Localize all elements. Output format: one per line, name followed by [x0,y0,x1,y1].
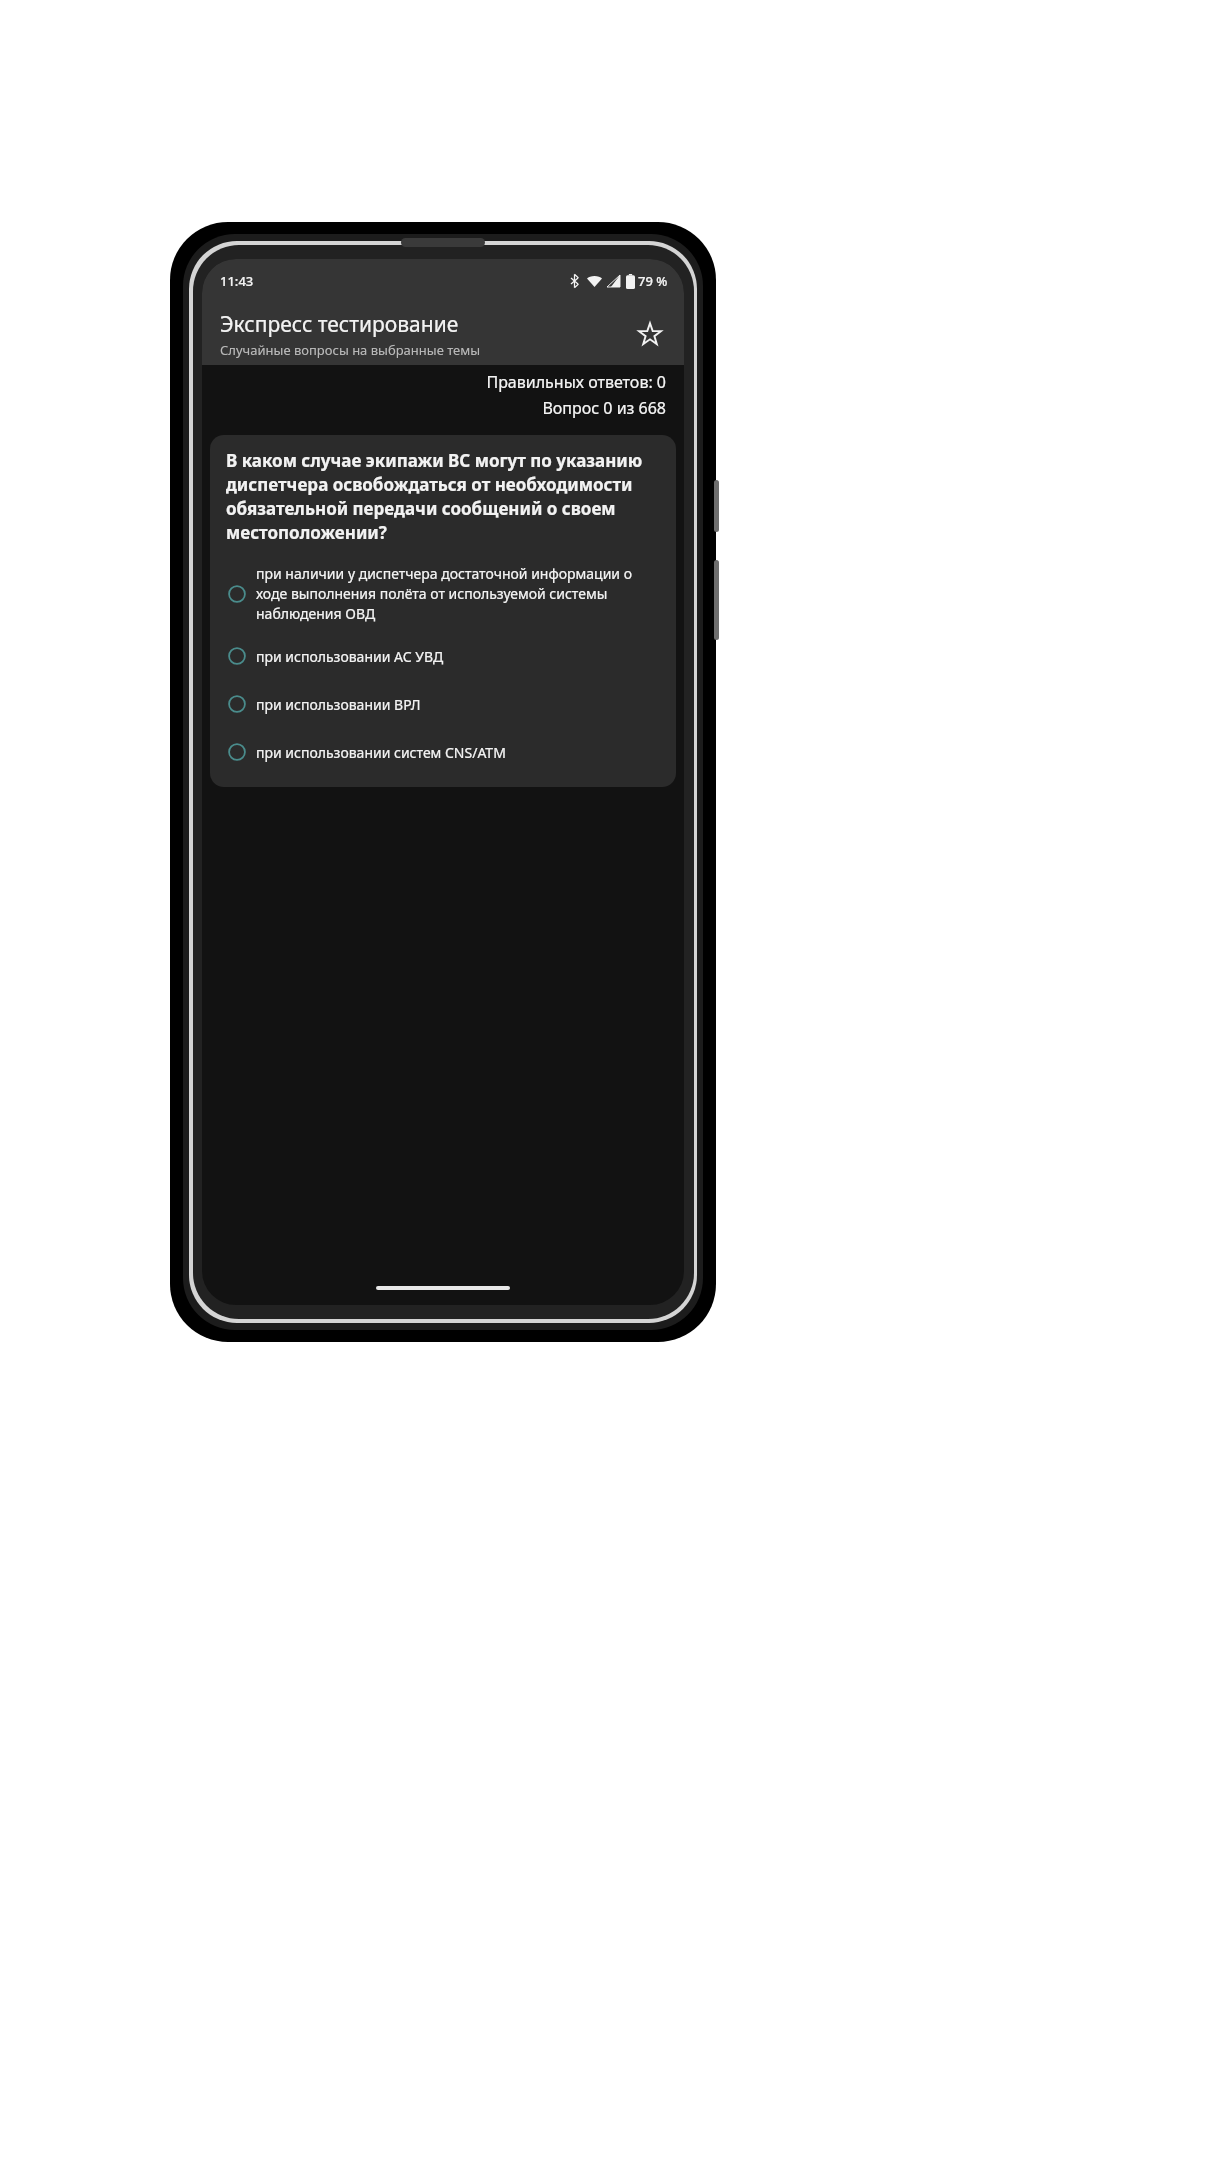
staticText: при использовании систем CNS/ATM [256,743,506,762]
staticText: 79 % [638,272,668,290]
staticText: Правильных ответов: 0 [486,371,666,393]
button[interactable]: при использовании АС УВД [222,639,664,673]
staticText: В каком случае экипажи ВС могут по указа… [226,449,660,544]
staticText: при использовании ВРЛ [256,695,421,714]
staticText: Случайные вопросы на выбранные темы [220,341,481,359]
staticText: 11:43 [220,272,254,290]
staticText: Экспресс тестирование [220,310,459,339]
staticText: при использовании АС УВД [256,647,444,666]
button[interactable]: при наличии у диспетчера достаточной инф… [222,562,664,625]
button[interactable]: при использовании систем CNS/ATM [222,735,664,769]
button[interactable]: при использовании ВРЛ [222,687,664,721]
button[interactable]: Добавить в избранное [626,310,674,358]
staticText: при наличии у диспетчера достаточной инф… [256,564,664,623]
staticText: Вопрос 0 из 668 [542,397,666,419]
